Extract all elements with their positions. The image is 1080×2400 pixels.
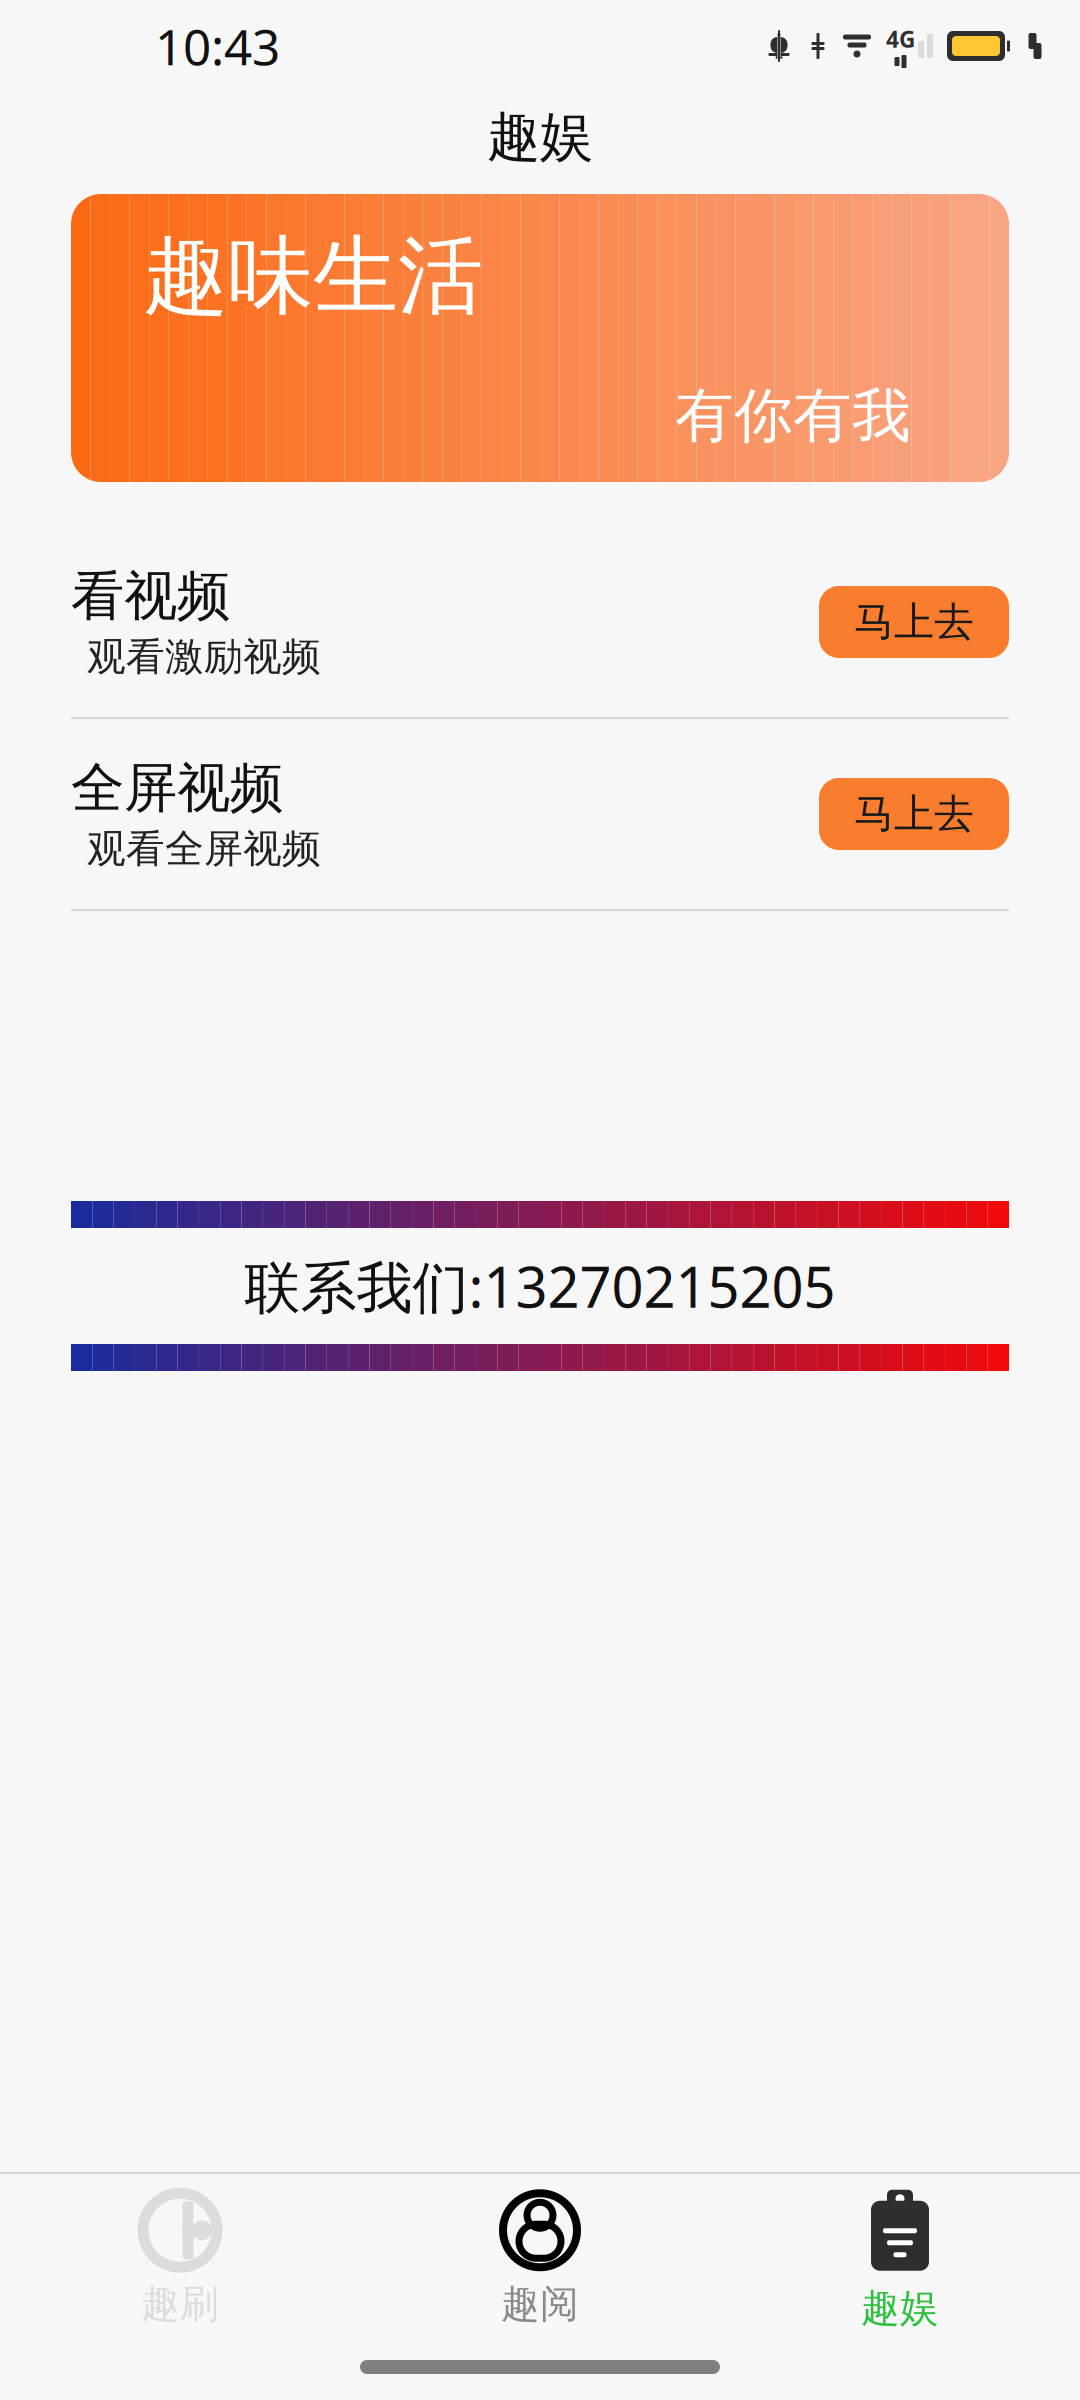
staticText: 看视频: [71, 563, 230, 629]
staticText: 趣阅: [501, 2280, 579, 2328]
staticText: 4G: [886, 24, 915, 54]
staticText: 观看激励视频: [87, 633, 321, 680]
staticText: 有你有我: [675, 380, 911, 452]
staticText: 观看全屏视频: [87, 825, 321, 872]
button[interactable]: 马上去: [819, 778, 1009, 850]
button[interactable]: 趣阅: [360, 2174, 720, 2344]
staticText: 全屏视频: [71, 755, 283, 821]
staticText: 10:43: [155, 13, 280, 79]
staticText: 趣刷: [141, 2280, 219, 2328]
staticText: 马上去: [854, 789, 974, 838]
button[interactable]: 趣娱: [720, 2174, 1080, 2344]
staticText: 联系我们:13270215205: [244, 1249, 835, 1323]
button[interactable]: 马上去: [819, 586, 1009, 658]
staticText: 趣娱: [861, 2284, 939, 2332]
staticText: 趣味生活: [143, 224, 483, 329]
button[interactable]: 趣刷: [0, 2174, 360, 2344]
staticText: 马上去: [854, 597, 974, 646]
staticText: 趣娱: [487, 104, 593, 170]
